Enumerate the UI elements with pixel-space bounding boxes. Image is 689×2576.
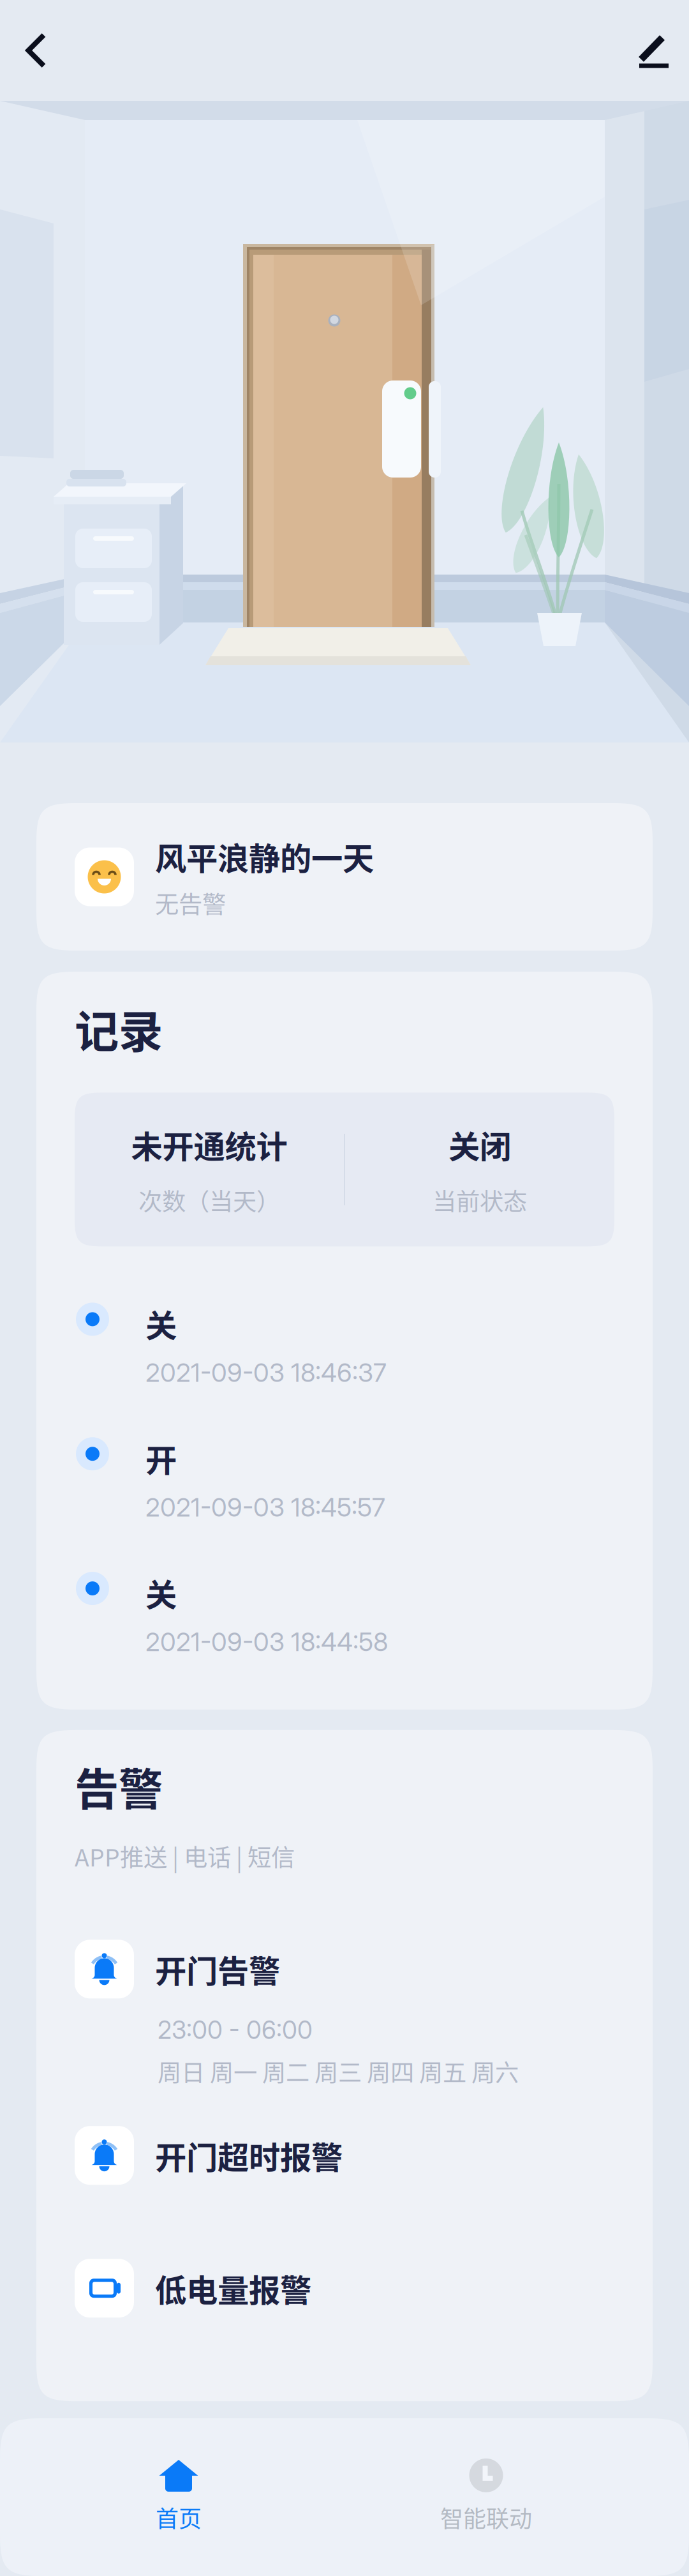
staticText: 未开通统计	[131, 1122, 287, 1167]
staticText: 关	[145, 1301, 177, 1346]
staticText: 开	[145, 1435, 177, 1481]
staticText: 23:00 - 06:00	[158, 2015, 313, 2045]
button[interactable]: 低电量报警	[75, 2259, 614, 2318]
staticText: 开门告警	[155, 1946, 280, 1992]
staticText: 首页	[156, 2501, 202, 2534]
staticText: 智能联动	[440, 2501, 532, 2534]
staticText: 开门超时报警	[155, 2133, 343, 2178]
staticText: 当前状态	[433, 1183, 527, 1217]
staticText: 记录	[75, 997, 163, 1061]
button[interactable]: Back	[0, 0, 72, 101]
button[interactable]: Edit	[618, 0, 689, 101]
staticText: 无告警	[155, 886, 226, 920]
staticText: 低电量报警	[155, 2265, 311, 2311]
staticText: 2021-09-03 18:45:57	[145, 1492, 385, 1523]
staticText: 2021-09-03 18:46:37	[145, 1357, 387, 1388]
staticText: 风平浪静的一天	[155, 834, 374, 879]
button[interactable]: 首页	[0, 2418, 357, 2576]
staticText: 2021-09-03 18:44:58	[145, 1626, 388, 1657]
staticText: 告警	[75, 1754, 163, 1818]
staticText: 周日 周一 周二 周三 周四 周五 周六	[158, 2054, 519, 2088]
button[interactable]: 智能联动	[357, 2418, 615, 2576]
staticText: 次数（当天）	[138, 1183, 280, 1217]
staticText: 关	[145, 1570, 177, 1616]
button[interactable]: 开门告警	[75, 1940, 614, 2088]
staticText: 关闭	[448, 1122, 511, 1167]
staticText: APP推送 | 电话 | 短信	[75, 1839, 295, 1873]
button[interactable]: 开门超时报警	[75, 2126, 614, 2185]
